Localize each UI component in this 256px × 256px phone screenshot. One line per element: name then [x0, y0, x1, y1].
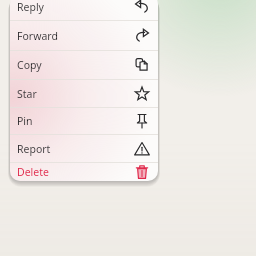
- staticText: Reply: [17, 0, 44, 14]
- button[interactable]: Delete: [10, 163, 158, 181]
- button[interactable]: Copy: [10, 51, 158, 79]
- staticText: Forward: [17, 29, 58, 43]
- staticText: Report: [17, 142, 51, 156]
- button[interactable]: Report: [10, 135, 158, 162]
- staticText: Copy: [17, 58, 42, 72]
- button[interactable]: Pin: [10, 108, 158, 134]
- button[interactable]: Star: [10, 80, 158, 107]
- staticText: Delete: [17, 165, 49, 179]
- button[interactable]: Forward: [10, 21, 158, 50]
- staticText: Star: [17, 87, 37, 101]
- staticText: Pin: [17, 114, 33, 128]
- button[interactable]: Reply: [10, 0, 158, 20]
